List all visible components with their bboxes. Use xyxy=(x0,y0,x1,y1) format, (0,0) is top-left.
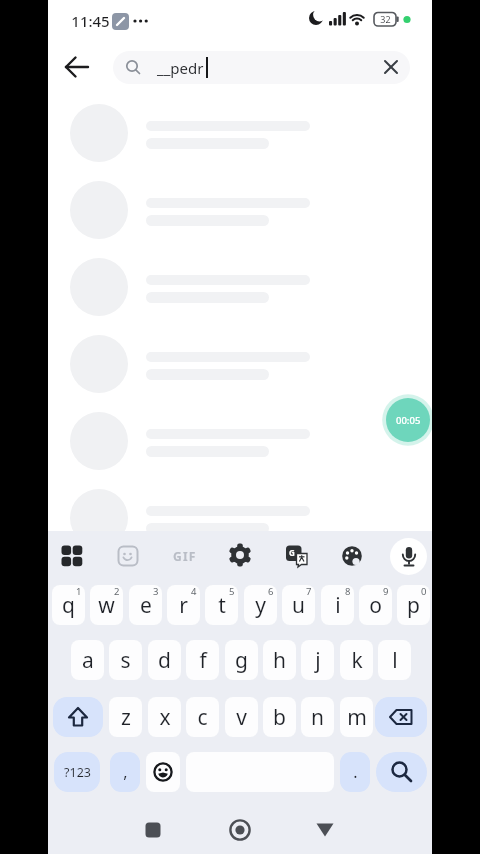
button[interactable]: u xyxy=(282,585,315,625)
staticText: n xyxy=(311,703,324,732)
button[interactable] xyxy=(70,181,128,239)
button[interactable] xyxy=(341,545,363,567)
staticText: 11:45 xyxy=(71,11,110,31)
staticText: r xyxy=(179,591,188,620)
button[interactable]: z xyxy=(109,697,142,737)
staticText: 0 xyxy=(421,585,427,598)
staticText: i xyxy=(335,591,341,620)
button[interactable]: m xyxy=(340,697,373,737)
staticText: w xyxy=(98,591,115,620)
button[interactable] xyxy=(70,335,128,393)
staticText: q xyxy=(62,591,75,620)
button[interactable]: o xyxy=(359,585,392,625)
button[interactable] xyxy=(117,545,139,567)
staticText: g xyxy=(235,646,248,675)
staticText: 3 xyxy=(153,585,159,598)
button[interactable]: ?123 xyxy=(54,752,100,792)
staticText: 32 xyxy=(380,13,391,25)
staticText: x xyxy=(159,703,171,732)
button[interactable]: f xyxy=(186,640,219,680)
button[interactable]: k xyxy=(340,640,373,680)
staticText: 4 xyxy=(191,585,197,598)
staticText: 5 xyxy=(229,585,235,598)
staticText: e xyxy=(140,591,152,620)
button[interactable] xyxy=(146,752,180,792)
button[interactable] xyxy=(70,489,128,547)
button[interactable]: n xyxy=(301,697,334,737)
button[interactable]: G xyxy=(285,544,309,569)
button[interactable]: l xyxy=(378,640,411,680)
staticText: G xyxy=(289,547,295,558)
button[interactable]: d xyxy=(148,640,181,680)
staticText: , xyxy=(123,761,128,783)
button[interactable] xyxy=(383,59,399,75)
staticText: GIF xyxy=(173,548,197,564)
staticText: 9 xyxy=(383,585,389,598)
staticText: . xyxy=(353,761,358,783)
button[interactable] xyxy=(375,697,427,737)
button[interactable]: v xyxy=(225,697,258,737)
staticText: u xyxy=(292,591,305,620)
button[interactable]: s xyxy=(109,640,142,680)
staticText: s xyxy=(120,646,131,675)
button[interactable]: . xyxy=(340,752,370,792)
button[interactable] xyxy=(315,822,335,838)
button[interactable] xyxy=(66,56,88,78)
staticText: a xyxy=(82,646,94,675)
staticText: 00:05 xyxy=(396,414,421,427)
button[interactable]: GIF xyxy=(166,547,204,565)
staticText: k xyxy=(351,646,363,675)
staticText: 7 xyxy=(306,585,312,598)
button[interactable] xyxy=(60,544,84,568)
staticText: t xyxy=(218,591,226,620)
button[interactable]: i xyxy=(321,585,354,625)
button[interactable]: g xyxy=(225,640,258,680)
button[interactable]: b xyxy=(263,697,296,737)
button[interactable]: q xyxy=(52,585,85,625)
button[interactable]: r xyxy=(167,585,200,625)
staticText: 8 xyxy=(345,585,351,598)
staticText: h xyxy=(273,646,286,675)
staticText: j xyxy=(315,646,321,675)
staticText: __pedr xyxy=(157,58,204,78)
staticText: 6 xyxy=(268,585,274,598)
button[interactable] xyxy=(390,538,427,575)
staticText: c xyxy=(197,703,208,732)
staticText: z xyxy=(121,703,131,732)
button[interactable]: x xyxy=(148,697,181,737)
staticText: o xyxy=(369,591,382,620)
button[interactable]: e xyxy=(129,585,162,625)
staticText: m xyxy=(347,703,367,732)
button[interactable] xyxy=(145,822,161,838)
button[interactable] xyxy=(70,258,128,316)
button[interactable] xyxy=(228,818,252,842)
button[interactable]: t xyxy=(205,585,238,625)
button[interactable]: p xyxy=(397,585,430,625)
button[interactable]: y xyxy=(244,585,277,625)
staticText: b xyxy=(273,703,286,732)
button[interactable] xyxy=(70,412,128,470)
button[interactable]: a xyxy=(71,640,104,680)
staticText: y xyxy=(255,591,266,620)
button[interactable]: 00:05 xyxy=(382,394,434,446)
staticText: l xyxy=(392,646,398,675)
staticText: 1 xyxy=(76,585,82,598)
button[interactable] xyxy=(53,697,103,737)
staticText: f xyxy=(199,646,207,675)
staticText: v xyxy=(236,703,247,732)
staticText: 2 xyxy=(114,585,120,598)
button[interactable] xyxy=(376,752,427,792)
button[interactable] xyxy=(228,543,252,567)
button[interactable]: , xyxy=(110,752,140,792)
button[interactable]: j xyxy=(301,640,334,680)
button[interactable]: w xyxy=(90,585,123,625)
staticText: ?123 xyxy=(64,764,91,781)
button[interactable] xyxy=(113,51,410,84)
button[interactable]: c xyxy=(186,697,219,737)
button[interactable] xyxy=(70,104,128,162)
staticText: p xyxy=(407,591,420,620)
button[interactable]: h xyxy=(263,640,296,680)
staticText: d xyxy=(158,646,171,675)
